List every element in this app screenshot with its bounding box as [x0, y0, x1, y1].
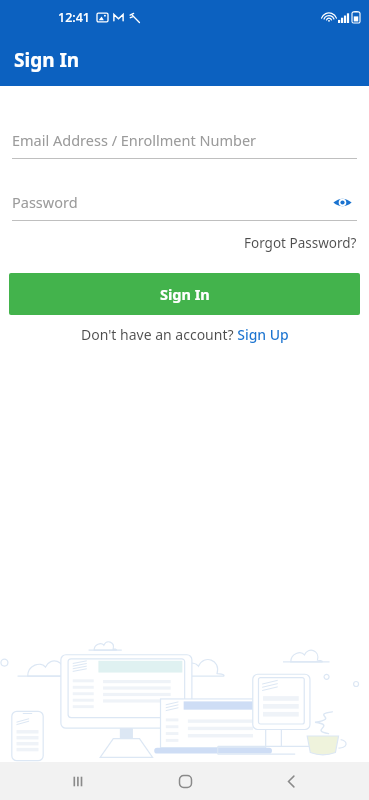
button[interactable]: Back	[273, 763, 309, 799]
button[interactable]: Don't have an account? Sign Up	[0, 322, 369, 347]
staticText: Sign In	[14, 47, 80, 73]
button[interactable]: Show password	[327, 189, 357, 215]
staticText: 12:41	[58, 9, 91, 26]
staticText: Email Address / Enrollment Number	[12, 130, 257, 150]
staticText: Sign In	[160, 284, 210, 304]
button[interactable]: Home	[167, 763, 203, 799]
button[interactable]: Recent apps	[60, 763, 96, 799]
staticText: Forgot Password?	[244, 234, 357, 252]
button[interactable]: Sign In	[9, 273, 360, 315]
staticText: Don't have an account? Sign Up	[81, 325, 289, 344]
staticText: Password	[12, 192, 78, 212]
button[interactable]: Forgot Password?	[232, 230, 369, 256]
